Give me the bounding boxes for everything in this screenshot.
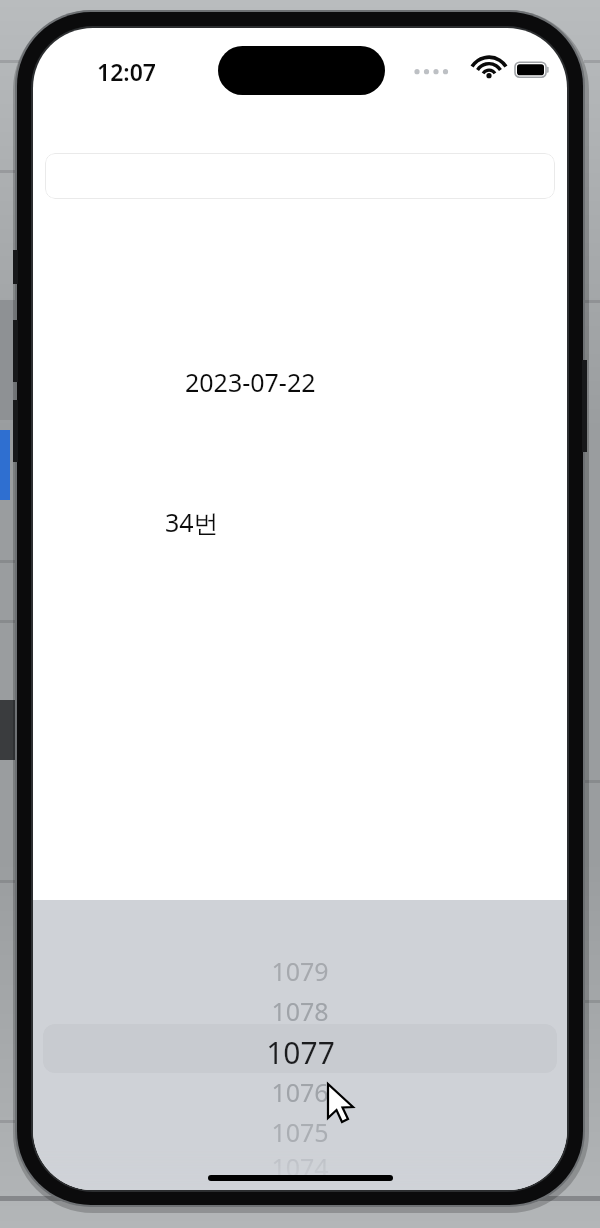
button[interactable]: 1079 <box>33 952 567 990</box>
button[interactable] <box>45 153 555 199</box>
staticText: 1076 <box>271 1075 329 1109</box>
other: Status indicators <box>411 52 551 86</box>
button[interactable]: 1077 <box>33 1030 567 1074</box>
staticText: 1075 <box>271 1115 329 1149</box>
staticText: 12:07 <box>97 56 156 87</box>
button[interactable]: 1078 <box>33 992 567 1030</box>
button[interactable]: 1074 <box>33 1148 567 1186</box>
staticText: 1078 <box>271 994 329 1028</box>
staticText: 1074 <box>271 1150 329 1184</box>
staticText: 34번 <box>165 505 219 539</box>
staticText: 2023-07-22 <box>185 365 316 399</box>
staticText: 1077 <box>266 1032 335 1073</box>
staticText: 1079 <box>271 954 329 988</box>
button[interactable]: 1076 <box>33 1073 567 1111</box>
button[interactable]: 1075 <box>33 1113 567 1151</box>
